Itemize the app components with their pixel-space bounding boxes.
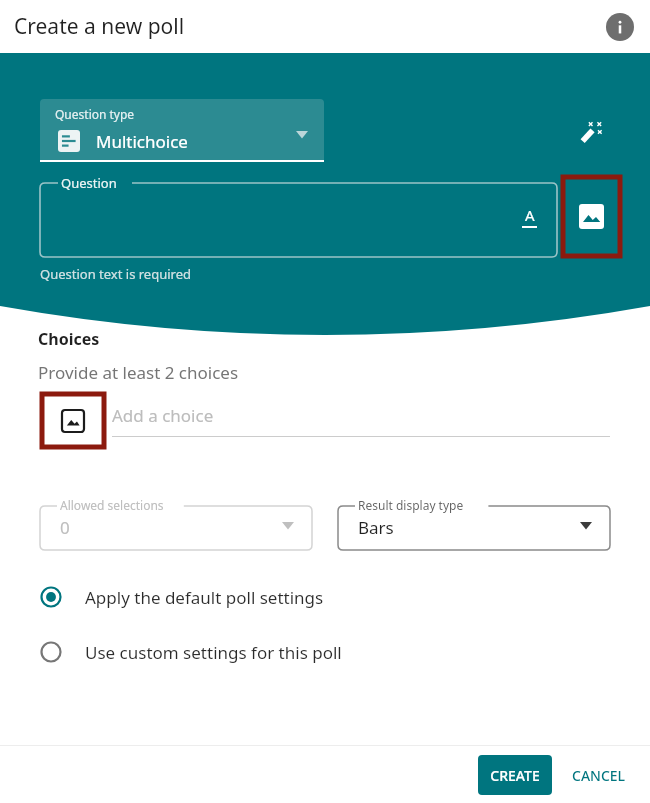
button[interactable]: Result display type xyxy=(338,499,610,550)
button[interactable]: Use custom settings for this poll xyxy=(40,633,610,671)
staticText: Create a new poll xyxy=(14,12,185,41)
button[interactable]: Auto generate poll xyxy=(572,113,612,153)
button[interactable]: Question xyxy=(40,175,557,257)
button[interactable]: Add a choice xyxy=(112,404,610,437)
button[interactable]: Add image to choice xyxy=(42,394,104,447)
button[interactable]: Allowed selections xyxy=(40,499,312,550)
button[interactable]: Add image to question xyxy=(563,177,620,256)
button[interactable]: Apply the default poll settings xyxy=(40,578,610,616)
staticText: CREATE xyxy=(490,766,540,785)
button[interactable]: CREATE xyxy=(478,755,552,795)
staticText: Multichoice xyxy=(96,130,188,153)
button[interactable]: Text format xyxy=(511,198,547,234)
button[interactable]: Information xyxy=(604,11,636,43)
staticText: CANCEL xyxy=(572,766,626,785)
staticText: Allowed selections xyxy=(60,497,164,513)
staticText: Add a choice xyxy=(112,404,214,427)
staticText: Provide at least 2 choices xyxy=(38,361,239,384)
staticText: Choices xyxy=(38,328,100,350)
staticText: 0 xyxy=(60,516,70,539)
staticText: Bars xyxy=(358,516,394,539)
staticText: Question xyxy=(61,174,117,192)
staticText: Question text is required xyxy=(40,265,192,283)
staticText: Result display type xyxy=(358,497,464,513)
button[interactable]: Question type xyxy=(40,99,324,162)
staticText: A xyxy=(525,205,535,225)
staticText: Apply the default poll settings xyxy=(85,586,324,609)
staticText: Question type xyxy=(55,106,135,122)
staticText: Use custom settings for this poll xyxy=(85,641,342,664)
button[interactable]: CANCEL xyxy=(566,755,632,795)
